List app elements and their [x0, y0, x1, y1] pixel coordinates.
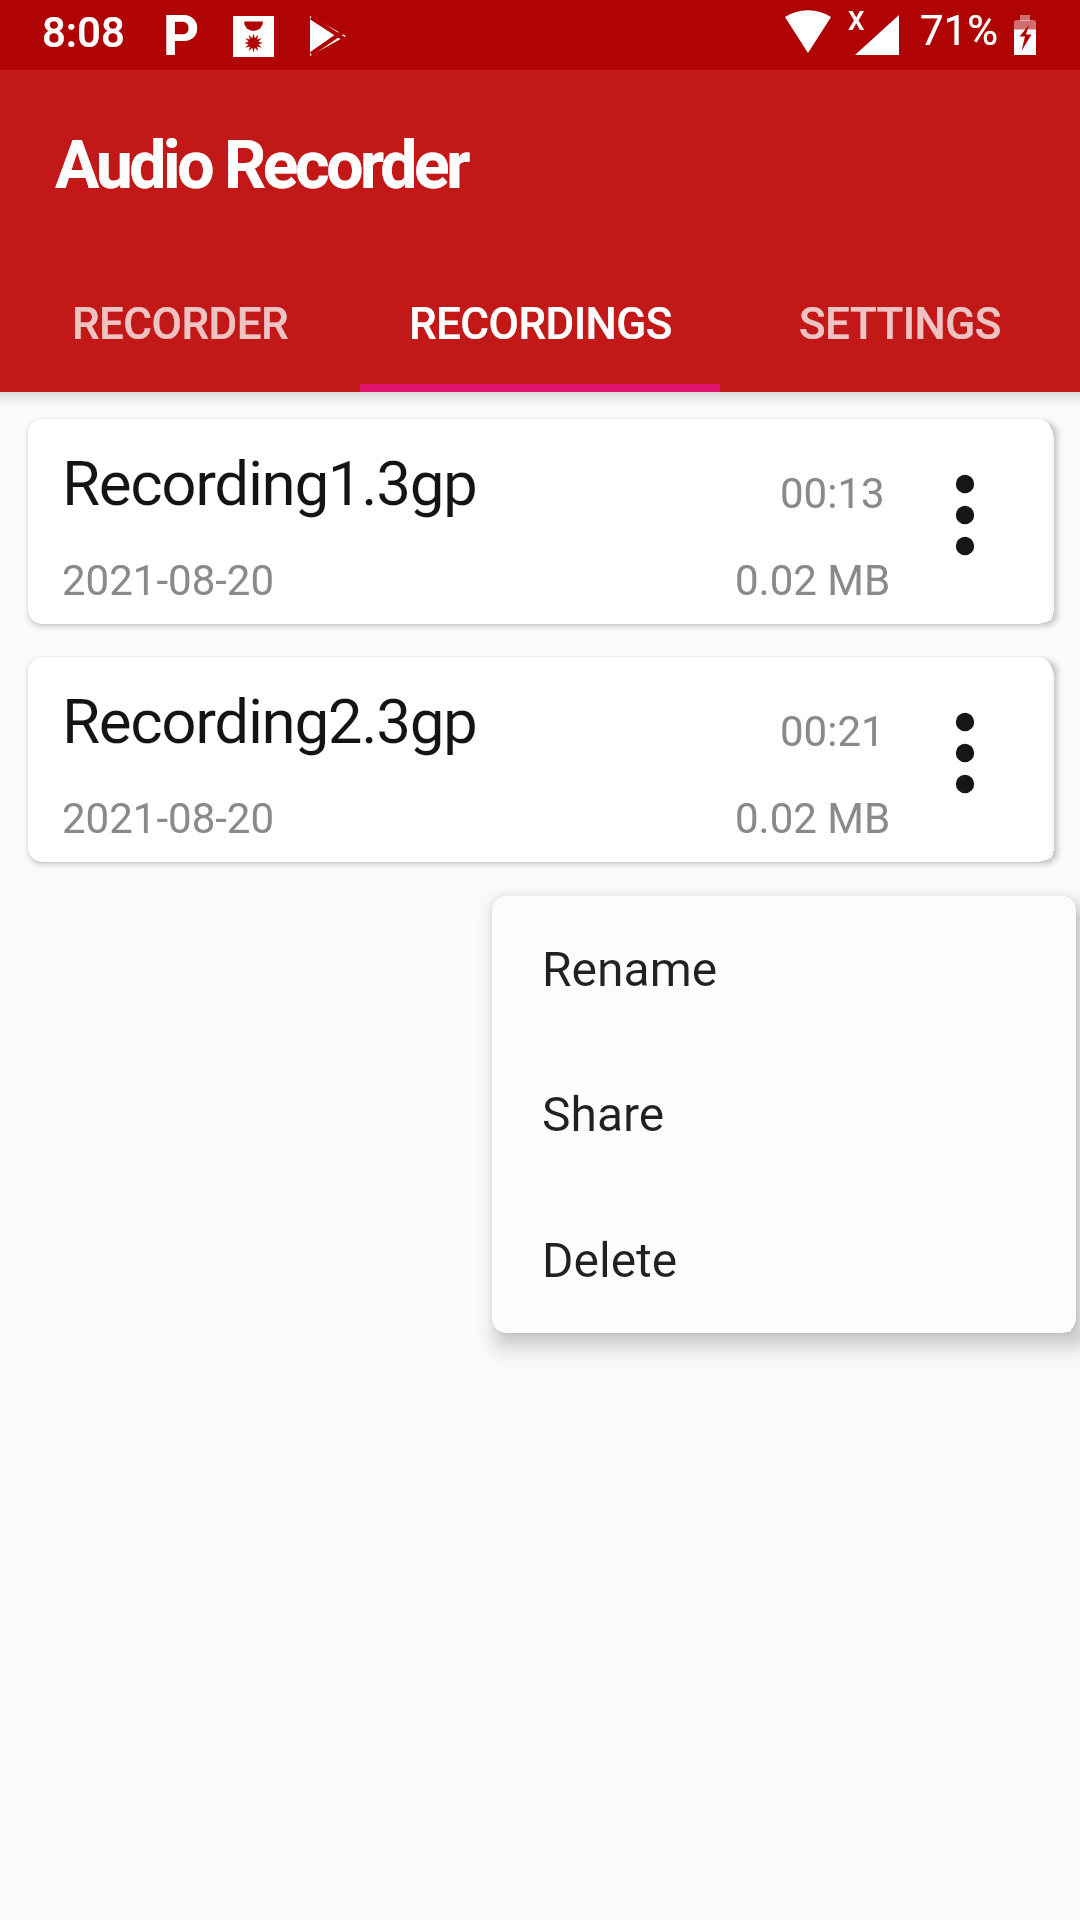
staticText: Delete	[542, 1232, 678, 1288]
button[interactable]	[928, 685, 1002, 819]
staticText: Rename	[542, 941, 718, 997]
staticText: Recording1.3gp	[62, 447, 477, 520]
staticText: P	[163, 3, 200, 69]
button[interactable]: Rename	[492, 896, 1076, 1041]
staticText: 2021-08-20	[62, 556, 275, 605]
staticText: 00:21	[780, 707, 885, 756]
button[interactable]: Share	[492, 1041, 1076, 1186]
staticText: 2021-08-20	[62, 794, 275, 843]
staticText: Recording2.3gp	[62, 685, 477, 758]
button[interactable]	[928, 447, 1002, 581]
staticText: Audio Recorder	[55, 127, 467, 204]
staticText: 0.02 MB	[735, 794, 891, 843]
staticText: 0.02 MB	[735, 556, 891, 605]
staticText: RECORDINGS	[409, 298, 672, 350]
staticText: Share	[542, 1086, 665, 1142]
staticText: 8:08	[42, 8, 125, 57]
staticText: X	[848, 6, 865, 36]
button[interactable]: RECORDINGS	[360, 278, 720, 370]
button[interactable]: Recording1.3gp	[28, 419, 1052, 624]
staticText: 71%	[920, 6, 998, 55]
staticText: 00:13	[780, 469, 885, 518]
button[interactable]: Recording2.3gp	[28, 657, 1052, 862]
staticText: SETTINGS	[799, 298, 1001, 350]
button[interactable]: Delete	[492, 1186, 1076, 1333]
staticText: RECORDER	[72, 298, 289, 350]
button[interactable]: SETTINGS	[720, 278, 1080, 370]
button[interactable]: RECORDER	[0, 278, 360, 370]
